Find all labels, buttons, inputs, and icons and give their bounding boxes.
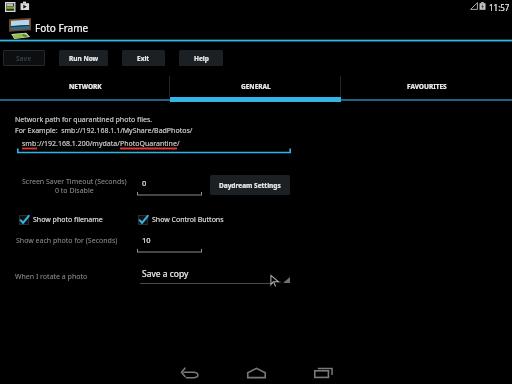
staticText: PhotoQuarantine: [120, 139, 177, 149]
button[interactable]: Recent apps: [296, 353, 350, 384]
button[interactable]: 0: [137, 176, 202, 196]
staticText: When I rotate a photo: [15, 272, 88, 282]
staticText: Network path for quarantined photo files…: [15, 115, 153, 125]
staticText: NETWORK: [69, 82, 102, 91]
staticText: Show Control Buttons: [152, 215, 224, 225]
staticText: 0: [142, 178, 147, 188]
button[interactable]: Show Control Buttons: [138, 215, 224, 225]
button[interactable]: Help: [179, 50, 223, 66]
button[interactable]: Foto Frame: [9, 16, 512, 42]
staticText: Help: [194, 54, 209, 63]
button[interactable]: Exit: [122, 50, 165, 66]
button[interactable]: Back: [163, 353, 217, 384]
button[interactable]: FAVOURITES: [341, 76, 512, 97]
staticText: FAVOURITES: [407, 82, 447, 91]
staticText: Daydream Settings: [219, 181, 281, 190]
staticText: Run Now: [69, 54, 99, 63]
staticText: Show each photo for (Seconds): [16, 236, 118, 246]
staticText: smb: [22, 139, 37, 149]
button[interactable]: Home: [229, 354, 283, 384]
staticText: Exit: [137, 54, 150, 63]
staticText: GENERAL: [241, 82, 271, 91]
button[interactable]: Show photo filename: [19, 215, 103, 225]
staticText: 11:57: [489, 2, 510, 13]
staticText: Screen Saver Timeout (Seconds): [22, 177, 127, 187]
staticText: For Example: smb://192.168.1.1/MyShare/B…: [15, 126, 193, 136]
staticText: /: [177, 139, 180, 149]
button[interactable]: NETWORK: [0, 76, 170, 97]
button[interactable]: Save: [3, 50, 45, 66]
button[interactable]: Daydream Settings: [210, 175, 290, 195]
staticText: Save: [16, 54, 32, 63]
staticText: ://192.168.1.200/mydata/: [37, 139, 120, 149]
staticText: Foto Frame: [35, 21, 89, 35]
button[interactable]: 10: [137, 233, 202, 253]
button[interactable]: GENERAL: [170, 76, 341, 97]
button[interactable]: Run Now: [59, 50, 108, 66]
staticText: Save a copy: [142, 268, 189, 280]
staticText: Show photo filename: [33, 215, 103, 225]
button[interactable]: Save a copy: [140, 268, 286, 284]
staticText: 0 to Disable: [55, 186, 94, 196]
staticText: 10: [142, 235, 151, 245]
